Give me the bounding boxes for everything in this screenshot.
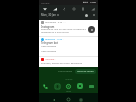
staticText: YouTube · xyxy=(45,58,56,61)
button[interactable]: Wi-Fi xyxy=(41,5,48,12)
staticText: Telegram bot xyxy=(41,41,58,45)
button[interactable]: Home xyxy=(65,97,71,102)
staticText: Conversation xyxy=(58,70,73,73)
button[interactable]: Add call xyxy=(87,82,96,90)
staticText: New message xyxy=(41,45,57,48)
button[interactable]: Settings xyxy=(84,13,88,17)
staticText: Telegram · 12 m · xyxy=(45,38,64,41)
button[interactable]: Auto-rotate xyxy=(70,5,77,12)
staticText: calidedod di ti una munso xyxy=(41,31,69,34)
button[interactable]: Screen cast xyxy=(89,5,96,12)
button[interactable]: Bluetooth xyxy=(60,5,67,12)
staticText: Di nuovo, adesso piu cose i decimento xyxy=(41,62,83,65)
staticText: Mon, 30 Jan xyxy=(41,13,56,17)
button[interactable]: Power xyxy=(92,13,96,17)
button[interactable]: Recents xyxy=(78,97,84,102)
staticText: Google xyxy=(41,1,50,4)
staticText: ▪▪ ▪ xyxy=(83,1,89,4)
button[interactable]: YouTube · xyxy=(39,57,98,67)
button[interactable]: Touch to return xyxy=(75,69,96,74)
staticText: 14:32 xyxy=(90,1,96,4)
staticText: Reactive de une te i qlie unza la sepero… xyxy=(41,28,86,31)
button[interactable]: Hold xyxy=(64,82,73,90)
staticText: Instagram · 8 m · · · xyxy=(45,21,66,24)
staticText: Touch to return xyxy=(77,70,94,73)
button[interactable]: Flashlight xyxy=(79,5,86,12)
button[interactable]: Keypad xyxy=(53,82,62,90)
button[interactable]: Mobile data xyxy=(51,5,58,12)
button[interactable]: Telegram · 12 m · xyxy=(39,37,98,55)
staticText: Instagram xyxy=(41,25,55,29)
staticText: ringing xyxy=(65,78,73,81)
button[interactable]: Instagram · 8 m · · · xyxy=(39,20,98,35)
button[interactable]: Mute xyxy=(75,82,84,90)
staticText: New message xyxy=(41,50,57,53)
button[interactable]: End call xyxy=(41,82,50,90)
button[interactable]: Back xyxy=(51,97,57,102)
staticText: Hold xyxy=(66,90,71,93)
